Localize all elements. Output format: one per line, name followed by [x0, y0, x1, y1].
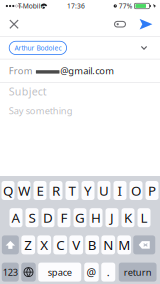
button[interactable]: S [25, 208, 38, 227]
staticText: From [9, 64, 33, 77]
button[interactable]: N [101, 235, 115, 254]
button[interactable]: A [9, 208, 22, 227]
staticText: K [124, 209, 132, 226]
staticText: space [48, 266, 72, 278]
button[interactable]: W [17, 181, 30, 200]
staticText: A [11, 209, 20, 226]
staticText: O [131, 182, 141, 199]
staticText: @ [86, 265, 96, 279]
staticText: Subject [9, 84, 47, 98]
button[interactable]: space [38, 263, 81, 282]
button[interactable]: Shift [2, 235, 19, 254]
button[interactable]: G [73, 208, 86, 227]
staticText: return [124, 266, 152, 278]
staticText: 77% [119, 2, 133, 10]
staticText: X [40, 236, 48, 254]
button[interactable]: Q [1, 181, 14, 200]
staticText: S [28, 209, 35, 226]
staticText: Q [3, 182, 13, 199]
button[interactable]: O [129, 181, 142, 200]
staticText: F [60, 209, 67, 226]
button[interactable]: 123 [2, 263, 19, 282]
staticText: G [75, 209, 85, 226]
button[interactable]: Delete [133, 235, 155, 254]
staticText: B [88, 236, 97, 254]
button[interactable]: I [113, 181, 126, 200]
staticText: E [36, 182, 43, 199]
button[interactable]: @ [84, 263, 99, 282]
button[interactable]: Z [21, 235, 35, 254]
staticText: C [56, 236, 64, 254]
staticText: N [103, 236, 113, 254]
staticText: M [118, 236, 130, 254]
button[interactable]: Y [81, 181, 94, 200]
staticText: T-Mobile [18, 2, 45, 10]
staticText: V [72, 236, 80, 254]
staticText: J [110, 209, 114, 226]
button[interactable]: Expand recipients [134, 38, 154, 58]
staticText: P [148, 182, 156, 199]
button[interactable]: Arthur Bodolec [9, 41, 67, 55]
staticText: @gmail.com [60, 64, 114, 77]
button[interactable]: H [89, 208, 102, 227]
button[interactable]: E [33, 181, 46, 200]
staticText: 123 [3, 266, 18, 278]
staticText: W [18, 182, 30, 199]
button[interactable]: D [41, 208, 54, 227]
button[interactable]: J [105, 208, 118, 227]
button[interactable]: R [49, 181, 62, 200]
staticText: T [68, 182, 75, 199]
button[interactable]: U [97, 181, 110, 200]
button[interactable]: V [69, 235, 83, 254]
staticText: Z [24, 236, 32, 254]
button[interactable]: Send [132, 13, 160, 35]
button[interactable]: P [145, 181, 158, 200]
button[interactable]: M [117, 235, 131, 254]
button[interactable]: L [137, 208, 150, 227]
button[interactable]: Attach [108, 13, 132, 35]
button[interactable]: T [65, 181, 78, 200]
button[interactable]: return [119, 263, 157, 282]
button[interactable]: . [101, 263, 115, 282]
button[interactable]: Next keyboard [21, 263, 36, 282]
button[interactable]: C [53, 235, 67, 254]
staticText: D [43, 209, 53, 226]
button[interactable]: B [85, 235, 99, 254]
staticText: L [140, 209, 147, 226]
staticText: Y [84, 182, 92, 199]
staticText: Say something [9, 104, 73, 117]
staticText: 17:36 [67, 2, 85, 10]
button[interactable]: Close [0, 13, 28, 35]
staticText: . [107, 265, 110, 279]
staticText: I [117, 182, 122, 199]
staticText: R [52, 182, 60, 199]
button[interactable]: X [37, 235, 51, 254]
staticText: U [99, 182, 109, 199]
staticText: Arthur Bodolec [14, 43, 61, 52]
button[interactable]: K [121, 208, 134, 227]
button[interactable]: F [57, 208, 70, 227]
staticText: H [91, 209, 101, 226]
